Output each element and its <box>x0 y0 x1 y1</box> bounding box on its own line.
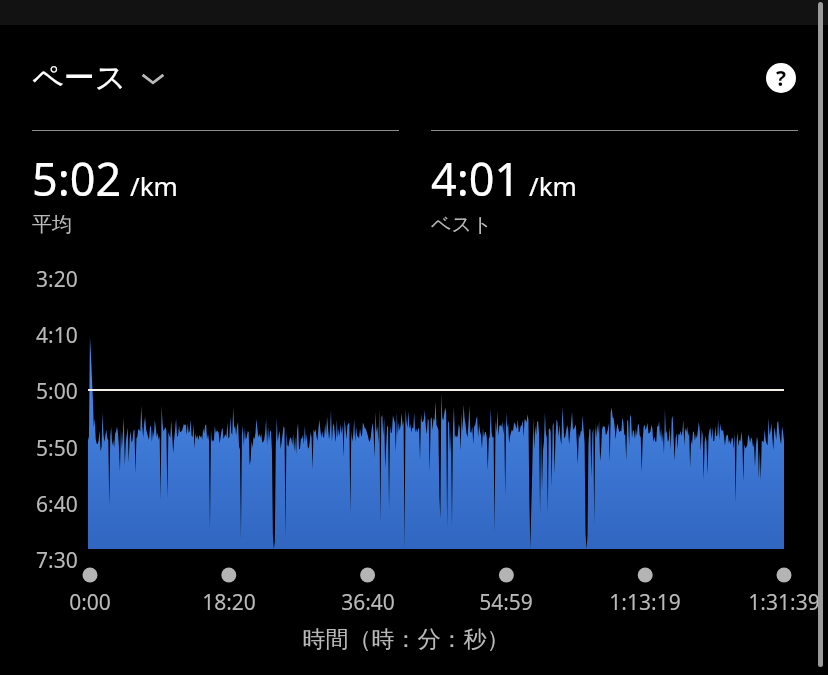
staticText: 時間（時：分：秒） <box>0 625 812 654</box>
staticText: ベスト <box>431 212 493 237</box>
staticText: 5:50 <box>36 434 78 463</box>
staticText: 6:40 <box>36 490 78 519</box>
staticText: 36:40 <box>318 588 418 617</box>
staticText: 5:02 <box>32 148 122 209</box>
staticText: ペース <box>32 58 127 97</box>
button[interactable]: ヘルプ <box>766 63 796 93</box>
staticText: 1:31:39 <box>734 588 828 617</box>
staticText: 18:20 <box>179 588 279 617</box>
button[interactable]: ペース <box>32 58 166 97</box>
staticText: 3:20 <box>36 265 78 294</box>
staticText: 5:00 <box>36 377 78 406</box>
staticText: 平均 <box>32 212 72 237</box>
staticText: 4:01 <box>431 148 521 209</box>
staticText: 54:59 <box>456 588 556 617</box>
button[interactable]: 5:02 <box>32 130 399 237</box>
staticText: 4:10 <box>36 321 78 350</box>
staticText: 7:30 <box>36 546 78 575</box>
staticText: 0:00 <box>40 588 140 617</box>
button[interactable]: 4:01 <box>431 130 798 237</box>
staticText: /km <box>130 168 178 203</box>
staticText: 1:13:19 <box>595 588 695 617</box>
staticText: ? <box>776 64 787 93</box>
staticText: /km <box>529 168 577 203</box>
